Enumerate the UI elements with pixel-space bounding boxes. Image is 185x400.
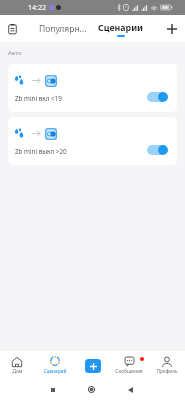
staticText: Zb mini вкл <19 <box>15 94 62 103</box>
button[interactable]: Профиль <box>149 351 185 378</box>
button[interactable]: Дом <box>0 351 35 378</box>
button[interactable]: Создать сценарий <box>85 359 101 373</box>
staticText: Популярн... <box>39 23 87 35</box>
button[interactable]: Zb mini вкл <19 <box>8 64 177 112</box>
button[interactable]: Включить сценарий <box>147 145 168 155</box>
staticText: Сценарий <box>43 368 67 375</box>
button[interactable]: Добавить <box>158 15 185 42</box>
button[interactable]: Главный экран <box>84 382 99 397</box>
staticText: Дом <box>12 368 23 375</box>
staticText: Сообщения <box>115 368 143 375</box>
staticText: Авто <box>8 49 22 57</box>
button[interactable]: Включить сценарий <box>147 92 168 102</box>
button[interactable]: Список <box>0 15 25 42</box>
button[interactable]: Сценарии <box>98 15 143 42</box>
button[interactable]: Сценарий <box>37 351 73 378</box>
staticText: Zb mini выкл >20 <box>15 147 67 156</box>
button[interactable]: Zb mini выкл >20 <box>8 117 177 165</box>
button[interactable]: Сообщения <box>111 351 147 378</box>
button[interactable]: Назад <box>123 382 138 397</box>
staticText: Профиль <box>156 368 178 375</box>
staticText: 14:22 <box>28 3 46 13</box>
staticText: Сценарии <box>98 22 143 34</box>
button[interactable]: Недавние приложения <box>45 382 60 397</box>
button[interactable]: Популярн... <box>28 15 98 42</box>
